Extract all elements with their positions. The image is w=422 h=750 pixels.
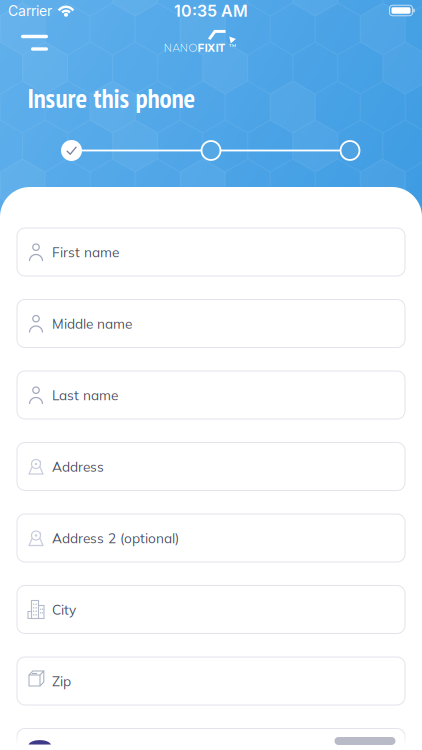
staticText: NANOFIXIT [163, 42, 225, 54]
staticText: Address [52, 458, 104, 475]
staticText: First name [52, 243, 119, 261]
staticText: Insure this phone [27, 80, 195, 116]
staticText: 10:35 AM [174, 1, 248, 21]
staticText: TM [229, 43, 236, 48]
button[interactable]: Zip [17, 657, 405, 705]
button[interactable]: Menu [7, 22, 63, 66]
button[interactable]: Address 2 (optional) [17, 514, 405, 562]
staticText: Carrier [8, 2, 52, 19]
button[interactable]: Last name [17, 371, 405, 419]
button[interactable]: Address [17, 442, 405, 490]
staticText: Last name [52, 386, 118, 404]
staticText: City [52, 601, 76, 618]
button[interactable]: First name [17, 228, 405, 276]
staticText: Middle name [52, 315, 132, 332]
staticText: Zip [52, 672, 71, 690]
button[interactable]: City [17, 585, 405, 633]
button[interactable]: Country [17, 728, 405, 750]
staticText: Address 2 (optional) [52, 529, 179, 547]
button[interactable]: Middle name [17, 299, 405, 347]
